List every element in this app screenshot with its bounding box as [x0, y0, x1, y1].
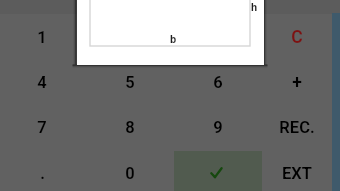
staticText: + — [292, 72, 302, 93]
staticText: 4 — [37, 73, 47, 92]
staticText: . — [40, 164, 45, 183]
button[interactable]: 0 — [86, 151, 174, 191]
staticText: 6 — [213, 73, 223, 92]
button[interactable]: 6 — [174, 60, 262, 105]
button[interactable]: 4 — [0, 60, 86, 105]
button[interactable]: Confirm — [174, 151, 262, 191]
staticText: 3 — [213, 28, 223, 47]
staticText: 7 — [37, 118, 47, 137]
button[interactable]: 2 — [86, 15, 174, 60]
staticText: 5 — [125, 73, 135, 92]
staticText: 8 — [125, 118, 135, 137]
button[interactable]: 8 — [86, 105, 174, 150]
button[interactable]: 5 — [86, 60, 174, 105]
staticText: b — [170, 33, 177, 46]
staticText: 0 — [125, 164, 135, 183]
staticText: 1 — [37, 28, 47, 47]
button[interactable]: 9 — [174, 105, 262, 150]
button[interactable]: 1 — [0, 15, 86, 60]
button[interactable]: 3 — [174, 15, 262, 60]
staticText: h — [251, 1, 258, 14]
staticText: 9 — [213, 118, 223, 137]
staticText: REC. — [279, 118, 315, 137]
staticText: EXT — [282, 164, 312, 183]
button[interactable]: 7 — [0, 105, 86, 150]
button[interactable]: C — [262, 15, 332, 60]
staticText: C — [291, 27, 303, 48]
staticText: 2 — [125, 28, 135, 47]
button[interactable]: EXT — [262, 151, 332, 191]
button[interactable]: REC. — [262, 105, 332, 150]
button[interactable]: + — [262, 60, 332, 105]
